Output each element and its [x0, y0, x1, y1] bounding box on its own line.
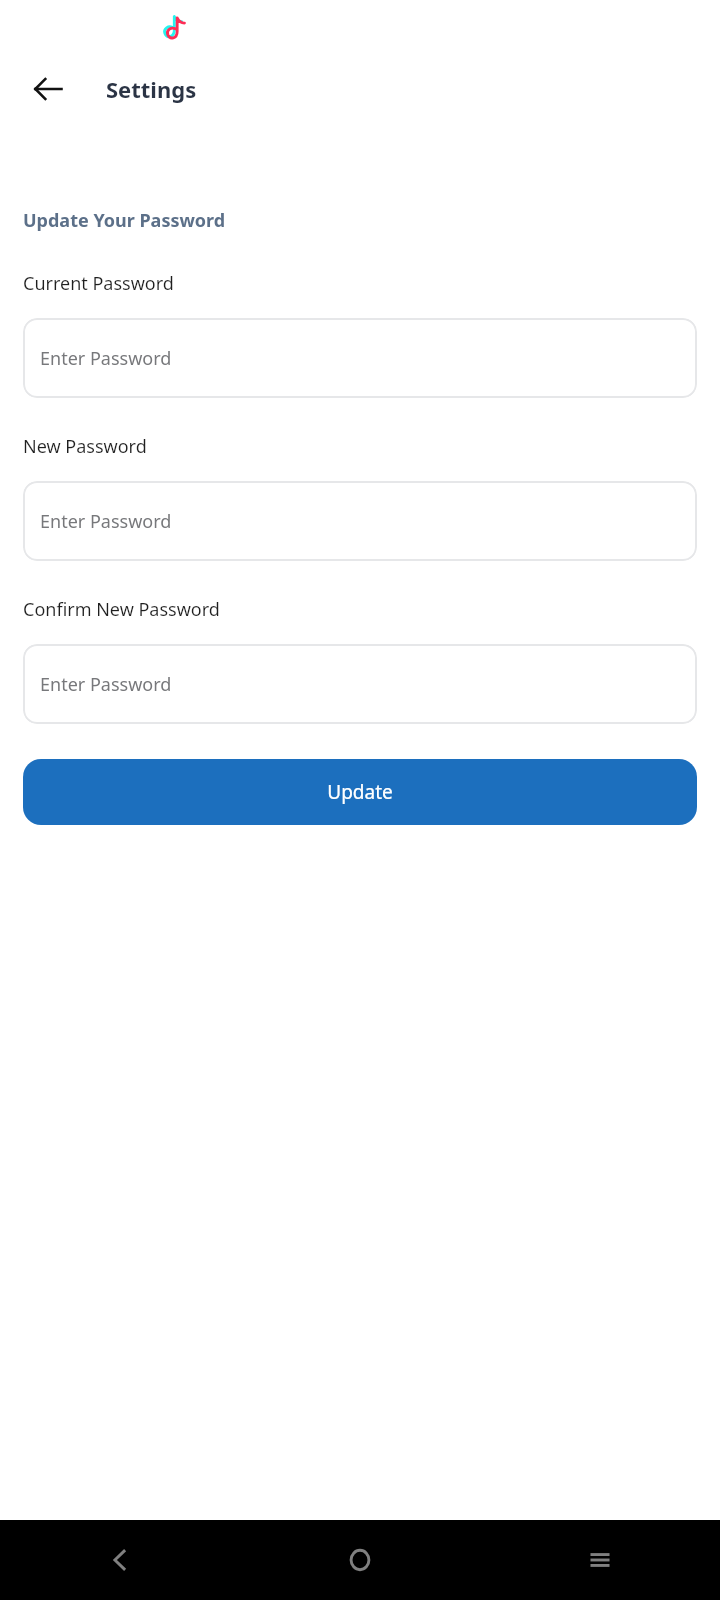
button[interactable]: Enter Password [23, 318, 697, 398]
button[interactable]: Recent apps [480, 1520, 720, 1600]
staticText: Update [327, 779, 393, 805]
button[interactable]: Back [0, 1520, 240, 1600]
button[interactable]: Back [22, 63, 74, 115]
staticText: New Password [23, 434, 147, 459]
staticText: Enter Password [40, 509, 172, 534]
button[interactable]: Enter Password [23, 481, 697, 561]
staticText: Confirm New Password [23, 597, 220, 622]
staticText: Update Your Password [23, 208, 226, 233]
staticText: Current Password [23, 271, 174, 296]
staticText: Enter Password [40, 346, 172, 371]
staticText: Enter Password [40, 672, 172, 697]
button[interactable]: Enter Password [23, 644, 697, 724]
button[interactable]: Home [240, 1520, 480, 1600]
button[interactable]: Update [23, 759, 697, 825]
staticText: Settings [106, 74, 197, 104]
